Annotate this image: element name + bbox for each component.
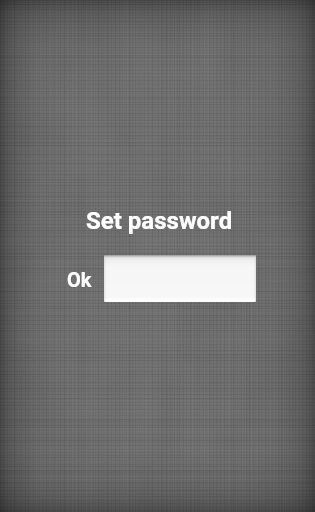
button[interactable]: Ok: [59, 258, 99, 298]
staticText: Ok: [67, 268, 92, 291]
staticText: Set password: [86, 207, 233, 235]
button[interactable]: Password input field: [104, 255, 256, 302]
